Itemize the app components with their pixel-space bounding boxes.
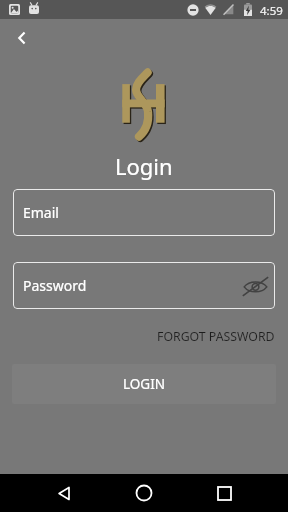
button[interactable]: Back — [9, 25, 35, 51]
button[interactable]: LOGIN — [12, 364, 276, 404]
button[interactable]: FORGOT PASSWORD — [144, 324, 288, 349]
button[interactable]: Recent apps — [204, 474, 244, 512]
staticText: 4:59 — [260, 3, 283, 19]
staticText: LOGIN — [123, 375, 166, 393]
button[interactable]: Back — [44, 474, 84, 512]
button[interactable]: Password — [13, 262, 275, 309]
staticText: Login — [115, 151, 173, 181]
button[interactable]: Show password — [241, 272, 269, 300]
button[interactable]: Home — [124, 474, 164, 512]
button[interactable]: Email — [13, 189, 275, 236]
staticText: Email — [23, 203, 59, 222]
staticText: FORGOT PASSWORD — [157, 328, 275, 345]
staticText: Password — [23, 276, 87, 295]
